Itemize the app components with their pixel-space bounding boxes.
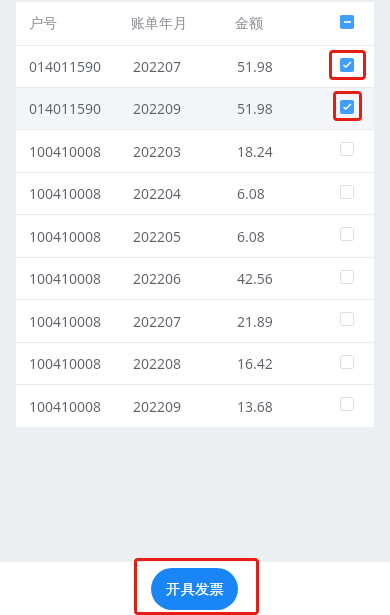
button[interactable]: 100410008 xyxy=(16,215,374,257)
staticText: 开具发票 xyxy=(166,580,224,598)
button[interactable]: Select bill xyxy=(340,355,354,369)
button[interactable]: 014011590 xyxy=(16,46,374,87)
staticText: 16.42 xyxy=(237,354,273,373)
staticText: 21.89 xyxy=(237,312,273,331)
button[interactable]: 014011590 xyxy=(16,88,374,129)
staticText: 202204 xyxy=(133,184,182,203)
button[interactable]: Select bill xyxy=(340,142,354,156)
staticText: 202206 xyxy=(133,269,182,288)
staticText: 13.68 xyxy=(237,397,273,416)
button[interactable]: 开具发票 xyxy=(151,568,238,610)
staticText: 51.98 xyxy=(237,57,273,76)
button[interactable]: Select bill xyxy=(340,185,354,199)
button[interactable]: Select bill xyxy=(340,270,354,284)
button[interactable]: Select bill xyxy=(340,397,354,411)
staticText: 100410008 xyxy=(29,227,102,246)
staticText: 014011590 xyxy=(29,57,102,76)
button[interactable]: 100410008 xyxy=(16,258,374,299)
button[interactable]: 100410008 xyxy=(16,343,374,384)
button[interactable]: Select bill xyxy=(340,227,354,241)
staticText: 户号 xyxy=(29,15,57,33)
staticText: 202205 xyxy=(133,227,182,246)
staticText: 202209 xyxy=(133,397,182,416)
staticText: 100410008 xyxy=(29,354,102,373)
staticText: 100410008 xyxy=(29,184,102,203)
button[interactable]: 100410008 xyxy=(16,173,374,214)
staticText: 51.98 xyxy=(237,99,273,118)
staticText: 18.24 xyxy=(237,142,273,161)
staticText: 6.08 xyxy=(237,227,265,246)
staticText: 202209 xyxy=(133,99,182,118)
button[interactable]: Select bill xyxy=(340,312,354,326)
staticText: 014011590 xyxy=(29,99,102,118)
staticText: 100410008 xyxy=(29,312,102,331)
staticText: 100410008 xyxy=(29,142,102,161)
staticText: 100410008 xyxy=(29,397,102,416)
staticText: 100410008 xyxy=(29,269,102,288)
staticText: 6.08 xyxy=(237,184,265,203)
button[interactable]: Bill selected xyxy=(340,100,354,114)
button[interactable]: Bill selected xyxy=(340,58,354,72)
button[interactable]: Select all bills xyxy=(340,15,354,29)
button[interactable]: 100410008 xyxy=(16,130,374,172)
button[interactable]: 100410008 xyxy=(16,385,374,427)
staticText: 账单年月 xyxy=(131,15,187,33)
staticText: 202207 xyxy=(133,312,182,331)
staticText: 金额 xyxy=(235,15,263,33)
staticText: 202203 xyxy=(133,142,182,161)
button[interactable]: 100410008 xyxy=(16,300,374,342)
staticText: 202208 xyxy=(133,354,182,373)
staticText: 202207 xyxy=(133,57,182,76)
staticText: 42.56 xyxy=(237,269,273,288)
